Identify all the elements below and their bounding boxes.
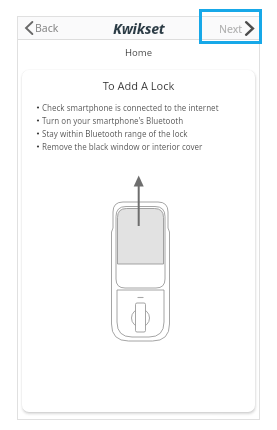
button[interactable]: Back xyxy=(17,21,67,35)
staticText: Kwikset xyxy=(113,19,165,38)
staticText: Check smartphone is connected to the int… xyxy=(42,102,219,113)
staticText: Stay within Bluetooth range of the lock xyxy=(42,128,188,139)
staticText: Next xyxy=(219,22,243,36)
staticText: Back xyxy=(35,21,59,35)
staticText: Home xyxy=(125,46,153,59)
staticText: Remove the black window or interior cove… xyxy=(42,141,203,152)
staticText: To Add A Lock xyxy=(22,78,255,93)
button[interactable]: Next xyxy=(211,21,260,36)
staticText: Turn on your smartphone's Bluetooth xyxy=(42,115,184,126)
